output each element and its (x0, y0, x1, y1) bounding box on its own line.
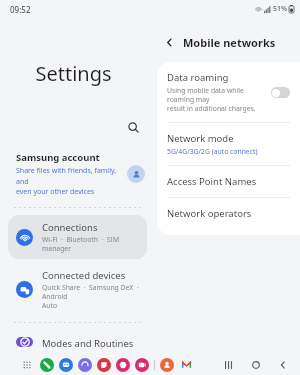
button[interactable]: Network operators (157, 198, 300, 229)
button[interactable]: Access Point Names (157, 166, 300, 197)
button[interactable]: Apps (20, 358, 34, 372)
button[interactable]: Samsung account (0, 147, 155, 202)
button[interactable]: Data roaming toggle (271, 87, 290, 98)
staticText: Access Point Names (167, 175, 257, 188)
button[interactable]: App 2 (78, 358, 92, 372)
staticText: 5G/4G/3G/2G (auto connect) (167, 147, 258, 156)
staticText: Samsung account (16, 151, 100, 164)
staticText: Wi-Fi · Bluetooth · SIM manager (42, 235, 139, 253)
button[interactable]: Home (248, 357, 263, 372)
button[interactable]: Connections (8, 215, 147, 259)
button[interactable]: Search settings (123, 117, 143, 137)
staticText: 51% (273, 4, 287, 14)
staticText: Modes and Routines (42, 337, 134, 347)
button[interactable]: Gmail (180, 358, 193, 371)
button[interactable]: Recents (221, 357, 236, 372)
staticText: Quick Share · Samsung DeX · Android Auto (42, 283, 139, 310)
staticText: Network operators (167, 207, 252, 220)
button[interactable]: Network mode (157, 123, 300, 165)
staticText: Using mobile data while roaming may resu… (167, 86, 265, 113)
staticText: 09:52 (10, 4, 31, 15)
button[interactable]: App 3 (97, 358, 111, 372)
button[interactable]: App 0 (40, 358, 54, 372)
button[interactable]: Connected devices (8, 263, 147, 316)
button[interactable]: App 5 (135, 358, 149, 372)
button[interactable]: Back (275, 357, 290, 372)
staticText: Data roaming (167, 71, 229, 84)
staticText: Mobile networks (183, 35, 276, 50)
button[interactable]: App 4 (116, 358, 130, 372)
button[interactable]: Data roaming (157, 62, 300, 122)
staticText: Connections (42, 221, 98, 234)
staticText: Network mode (167, 132, 234, 145)
button[interactable]: Contacts (160, 358, 174, 372)
button[interactable]: Modes and Routines (8, 331, 147, 353)
staticText: Connected devices (42, 269, 126, 282)
button[interactable]: Back (159, 32, 179, 52)
staticText: Share files with friends, family, and ev… (16, 166, 123, 196)
button[interactable]: App 1 (59, 358, 73, 372)
staticText: Settings (0, 60, 147, 87)
